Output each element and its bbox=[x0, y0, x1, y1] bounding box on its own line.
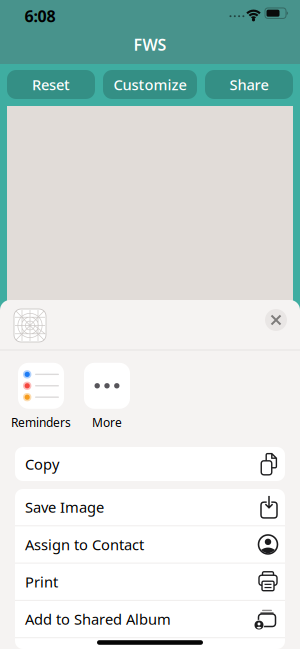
button[interactable]: Reset bbox=[7, 70, 95, 99]
staticText: Reminders bbox=[11, 414, 71, 430]
staticText: Share bbox=[229, 75, 268, 94]
staticText: 6:08 bbox=[24, 5, 55, 27]
button[interactable]: Close bbox=[265, 309, 287, 331]
staticText: Save Image bbox=[25, 497, 104, 517]
staticText: FWS bbox=[133, 34, 166, 55]
staticText: Assign to Contact bbox=[25, 535, 144, 554]
staticText: Reset bbox=[32, 75, 70, 94]
button[interactable]: Add to Shared Album bbox=[15, 601, 285, 637]
button[interactable]: Reminders bbox=[11, 363, 71, 430]
staticText: Customize bbox=[113, 75, 186, 94]
button[interactable]: Customize bbox=[103, 70, 197, 99]
button[interactable]: Print bbox=[15, 564, 285, 600]
button[interactable]: Assign to Contact bbox=[15, 526, 285, 563]
button[interactable]: More bbox=[84, 363, 130, 430]
staticText: Add to Shared Album bbox=[25, 609, 171, 629]
button[interactable]: Copy bbox=[15, 447, 285, 481]
staticText: More bbox=[92, 414, 122, 430]
staticText: Print bbox=[25, 572, 58, 591]
button[interactable]: Save Image bbox=[15, 489, 285, 525]
staticText: Copy bbox=[25, 454, 59, 474]
button[interactable]: Share bbox=[205, 70, 293, 99]
